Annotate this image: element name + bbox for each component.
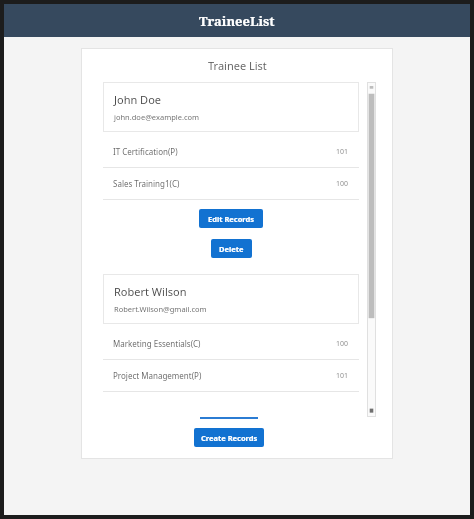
staticText: Trainee List [208, 58, 267, 73]
button[interactable]: John Doe [103, 82, 359, 132]
staticText: Project Management(P) [113, 370, 202, 381]
staticText: john.doe@example.com [114, 112, 200, 122]
button[interactable]: Create Records [194, 428, 264, 447]
button[interactable]: Project Management(P) [103, 360, 359, 391]
button[interactable]: Robert Wilson [103, 274, 359, 324]
staticText: 101 [336, 147, 349, 157]
staticText: John Doe [114, 92, 162, 107]
staticText: Edit Records [208, 214, 255, 224]
staticText: 100 [336, 179, 349, 189]
staticText: IT Certification(P) [113, 146, 178, 157]
button[interactable]: Delete [211, 239, 252, 258]
button[interactable]: Edit Records [199, 209, 263, 228]
staticText: Sales Training1(C) [113, 178, 180, 189]
button[interactable]: Sales Training1(C) [103, 168, 359, 199]
staticText: 101 [336, 371, 349, 381]
button[interactable]: Marketing Essentials(C) [103, 328, 359, 359]
staticText: Delete [219, 244, 244, 254]
staticText: Robert.Wilson@gmail.com [114, 304, 207, 314]
staticText: TraineeList [199, 12, 275, 30]
staticText: Marketing Essentials(C) [113, 338, 201, 349]
staticText: 100 [336, 339, 349, 349]
staticText: Create Records [201, 433, 258, 443]
button[interactable]: IT Certification(P) [103, 136, 359, 167]
staticText: Robert Wilson [114, 284, 187, 299]
